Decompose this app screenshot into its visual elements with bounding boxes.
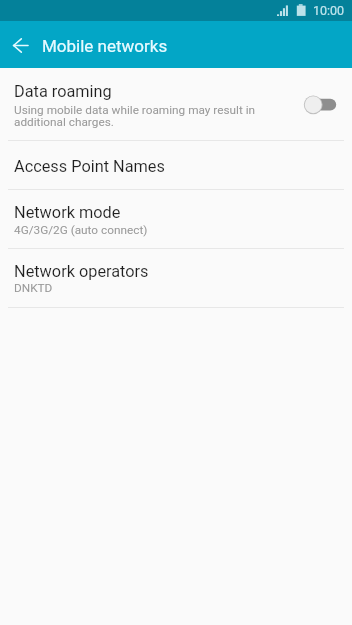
button[interactable]: Access Point Names (0, 141, 352, 189)
staticText: Mobile networks (42, 36, 168, 56)
staticText: Network operators (14, 262, 149, 281)
button[interactable]: Data roaming (0, 68, 352, 140)
staticText: 10:00 (313, 3, 345, 18)
button[interactable]: Data roaming, off (302, 94, 340, 115)
other: Mobile signal strength (277, 4, 289, 17)
button[interactable]: Network mode (0, 190, 352, 248)
staticText: Access Point Names (14, 157, 165, 176)
staticText: Network mode (14, 203, 121, 222)
staticText: Using mobile data while roaming may resu… (14, 103, 256, 129)
button[interactable]: Network operators (0, 249, 352, 307)
staticText: DNKTD (14, 281, 53, 295)
button[interactable]: Navigate up (0, 24, 42, 66)
other: Battery (296, 4, 307, 17)
staticText: 4G/3G/2G (auto connect) (14, 223, 148, 237)
staticText: Data roaming (14, 82, 112, 101)
